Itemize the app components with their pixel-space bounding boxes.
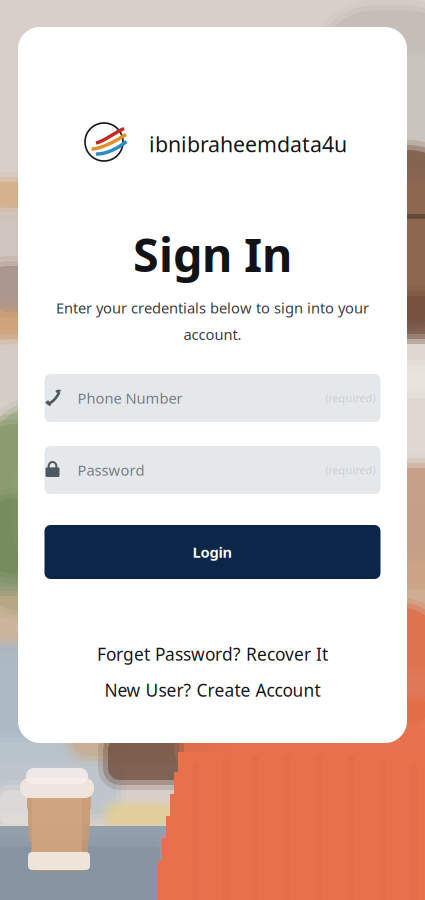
staticText: Sign In (133, 223, 292, 285)
staticText: Login (192, 542, 232, 562)
button[interactable]: Login (44, 525, 380, 579)
staticText: Enter your credentials below to sign int… (56, 298, 369, 317)
staticText: Forget Password? Recover It (97, 642, 328, 665)
button[interactable]: Phone Number (44, 374, 380, 422)
button[interactable]: New User? Create Account (18, 679, 407, 701)
staticText: Phone Number (77, 388, 182, 408)
staticText: New User? Create Account (104, 678, 320, 701)
button[interactable]: Forget Password? Recover It (18, 643, 407, 665)
staticText: account. (183, 324, 241, 344)
staticText: (required) (325, 463, 375, 477)
staticText: Password (77, 460, 144, 480)
staticText: (required) (325, 391, 375, 405)
button[interactable]: Password (44, 446, 380, 494)
staticText: ibnibraheemdata4u (149, 130, 347, 158)
